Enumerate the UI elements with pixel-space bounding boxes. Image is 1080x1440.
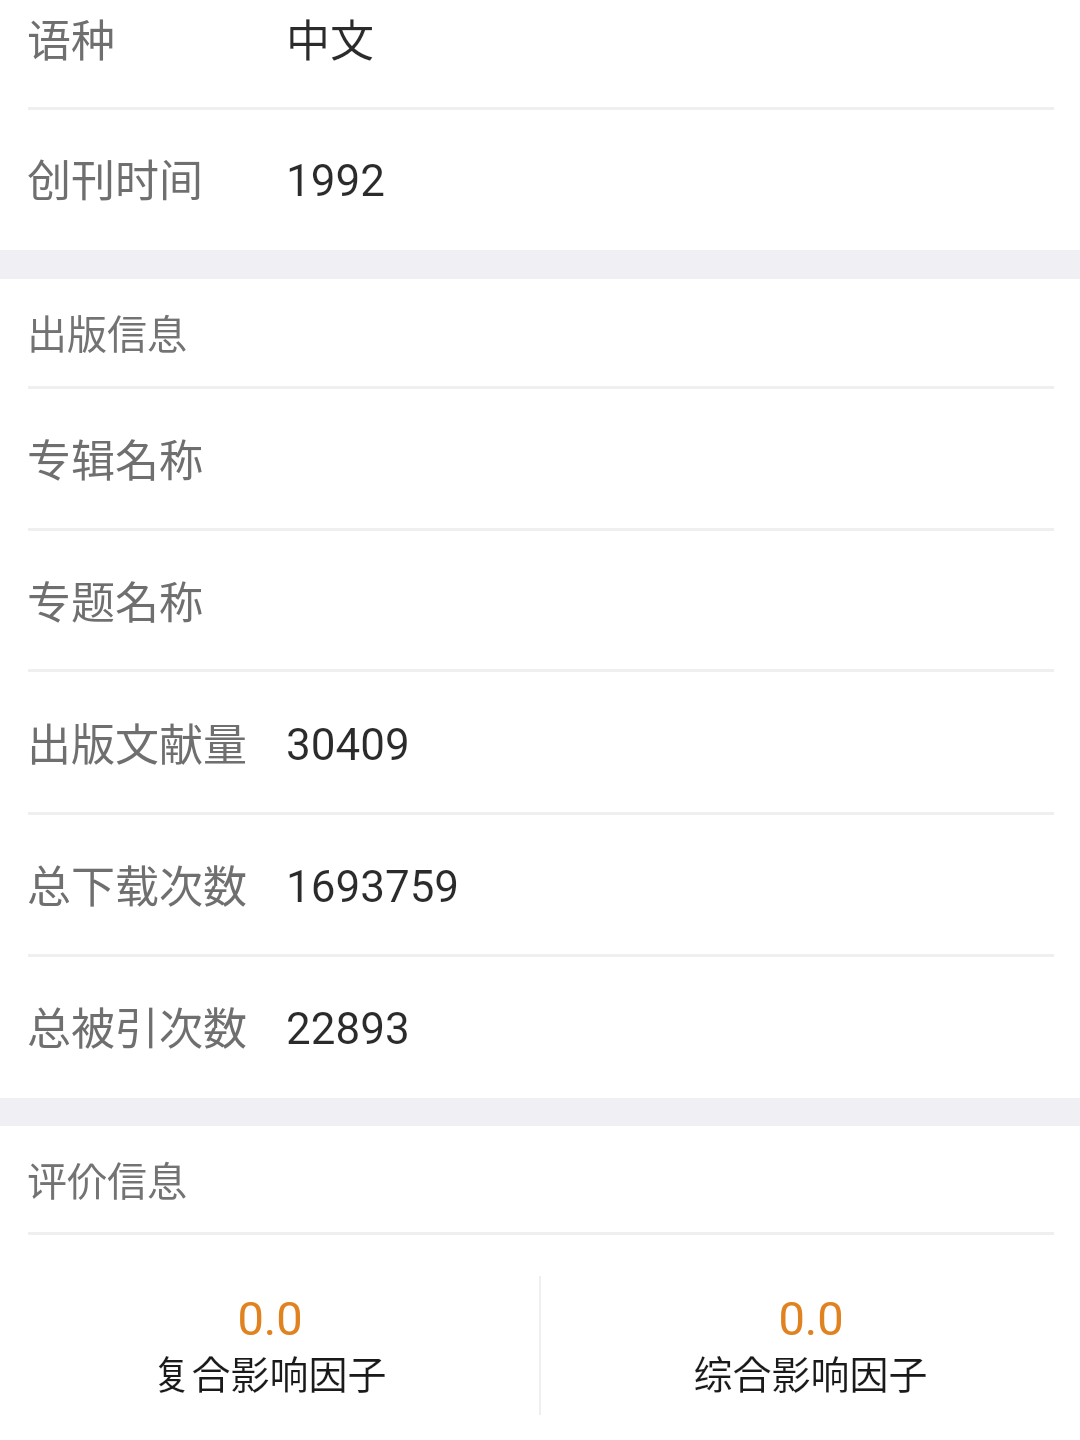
staticText: 语种: [27, 6, 115, 70]
staticText: 创刊时间: [27, 146, 203, 210]
staticText: 30409: [286, 719, 410, 771]
staticText: 专题名称: [27, 568, 203, 632]
button[interactable]: 专辑名称: [0, 389, 1080, 531]
staticText: 专辑名称: [27, 426, 203, 490]
button[interactable]: 总下载次数: [0, 815, 1080, 957]
staticText: 复合影响因子: [152, 1344, 387, 1400]
staticText: 0.0: [237, 1291, 303, 1346]
staticText: 0.0: [778, 1291, 844, 1346]
staticText: 1992: [286, 155, 385, 207]
button[interactable]: 出版文献量: [0, 672, 1080, 815]
button[interactable]: 专题名称: [0, 531, 1080, 672]
staticText: 出版信息: [27, 303, 187, 361]
staticText: 总被引次数: [27, 994, 247, 1058]
staticText: 中文: [286, 6, 374, 70]
button[interactable]: 0.0: [0, 1235, 539, 1440]
button[interactable]: 0.0: [541, 1235, 1080, 1440]
staticText: 22893: [286, 1003, 410, 1055]
staticText: 1693759: [286, 861, 460, 913]
staticText: 出版文献量: [27, 710, 247, 774]
button[interactable]: 语种: [0, 0, 1080, 110]
button[interactable]: 总被引次数: [0, 957, 1080, 1098]
staticText: 综合影响因子: [693, 1344, 928, 1400]
button[interactable]: 创刊时间: [0, 110, 1080, 250]
staticText: 总下载次数: [27, 852, 247, 916]
staticText: 评价信息: [27, 1150, 187, 1208]
